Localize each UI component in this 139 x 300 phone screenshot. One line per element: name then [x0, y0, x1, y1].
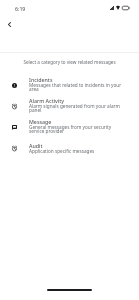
- staticText: Alarm Activity: [29, 97, 65, 104]
- staticText: Incidents: [29, 76, 53, 83]
- staticText: panel: [29, 107, 42, 113]
- staticText: Select a category to view related messag…: [0, 59, 139, 65]
- button[interactable]: Message: [0, 117, 139, 138]
- staticText: Messages that related to incidents in yo…: [29, 82, 122, 88]
- button[interactable]: Alarm Activity: [0, 96, 139, 117]
- staticText: Message: [29, 118, 52, 125]
- staticText: 6:19: [15, 5, 26, 12]
- staticText: Audit: [29, 142, 43, 149]
- button[interactable]: Back: [2, 17, 17, 32]
- staticText: area: [29, 86, 39, 92]
- staticText: Alarm signals generated from your alarm: [29, 103, 120, 109]
- button[interactable]: Incidents: [0, 75, 139, 96]
- staticText: General messages from your security: [29, 124, 112, 130]
- staticText: Application specific messages: [29, 148, 95, 154]
- staticText: service provider: [29, 128, 65, 134]
- button[interactable]: Audit: [0, 138, 139, 159]
